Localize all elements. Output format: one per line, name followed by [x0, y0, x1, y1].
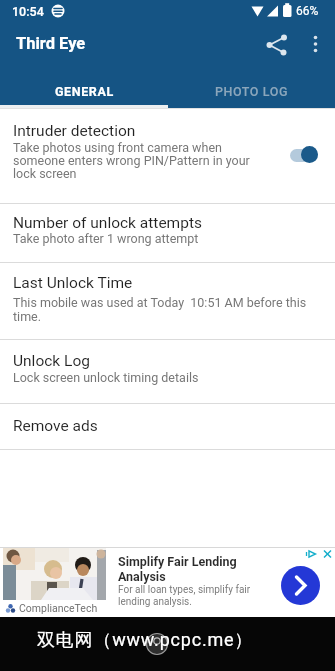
staticText: Last Unlock Time [13, 274, 133, 292]
staticText: Third Eye [16, 34, 86, 53]
staticText: Take photos using front camera when some… [13, 140, 250, 181]
staticText: Take photo after 1 wrong attempt [13, 231, 199, 246]
button[interactable] [281, 566, 320, 605]
staticText: 双电网（www.pcpc.me） [37, 629, 254, 652]
button[interactable] [289, 145, 320, 165]
button[interactable]: Intruder detection [0, 109, 335, 203]
button[interactable] [302, 30, 330, 58]
staticText: 10:54 [12, 4, 44, 19]
staticText: ComplianceTech [19, 602, 98, 614]
staticText: For all loan types, simplify fair lendin… [118, 584, 251, 608]
staticText: 66% [296, 4, 319, 18]
button[interactable]: Last Unlock Time [0, 263, 335, 339]
button[interactable]: Unlock Log [0, 340, 335, 403]
staticText: Intruder detection [13, 122, 136, 140]
staticText: Lock screen unlock timing details [13, 370, 199, 385]
button[interactable]: Number of unlock attempts [0, 204, 335, 262]
staticText: Number of unlock attempts [13, 214, 202, 232]
button[interactable]: GENERAL [0, 75, 168, 108]
staticText: Remove ads [13, 417, 98, 435]
staticText: Simplify Fair Lending Analysis [118, 554, 237, 584]
button[interactable] [258, 30, 298, 58]
button[interactable]: ComplianceTech [0, 547, 335, 617]
staticText: Unlock Log [13, 352, 90, 370]
button[interactable]: PHOTO LOG [168, 75, 335, 108]
staticText: This mobile was used at Today 10:51 AM b… [13, 295, 307, 324]
button[interactable]: Remove ads [0, 404, 335, 449]
staticText: GENERAL [55, 84, 114, 99]
staticText: PHOTO LOG [215, 84, 289, 99]
